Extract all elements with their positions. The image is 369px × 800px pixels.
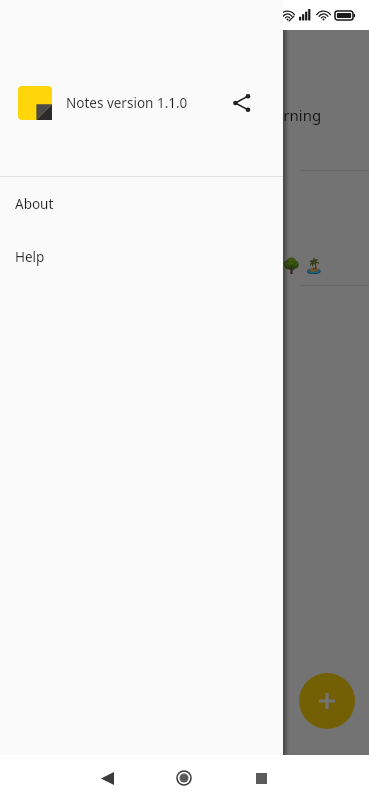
button[interactable]: Help — [0, 230, 283, 283]
button[interactable]: About — [0, 177, 283, 230]
button[interactable]: Notes version 1.1.0 — [18, 86, 219, 120]
button[interactable]: Recent apps — [246, 763, 276, 793]
staticText: About — [15, 195, 54, 213]
button[interactable]: Add note — [299, 673, 355, 729]
button[interactable]: Back — [92, 763, 122, 793]
button[interactable]: Share — [219, 80, 265, 126]
button[interactable]: Home — [169, 763, 199, 793]
staticText: Notes version 1.1.0 — [66, 94, 188, 112]
staticText: Good morning — [218, 105, 322, 125]
staticText: Help — [15, 248, 45, 266]
staticText: 🌳 🏝 — [282, 255, 324, 275]
